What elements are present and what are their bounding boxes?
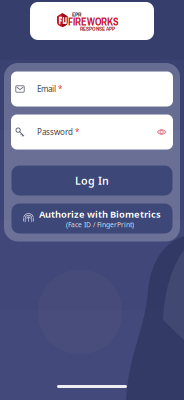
staticText: Log In	[75, 173, 109, 188]
staticText: *	[58, 84, 62, 94]
button[interactable]: Authorize with Biometrics	[11, 203, 172, 233]
staticText: RESPONSE APP	[80, 25, 115, 32]
staticText: Authorize with Biometrics	[39, 208, 161, 220]
button[interactable]: Log In	[11, 165, 172, 195]
staticText: FIREWORKS	[68, 15, 119, 29]
staticText: Email	[37, 84, 56, 94]
staticText: EPR	[72, 10, 81, 18]
staticText: Password	[37, 127, 73, 137]
staticText: (Face ID / FingerPrint)	[66, 220, 134, 229]
staticText: *	[75, 127, 79, 137]
